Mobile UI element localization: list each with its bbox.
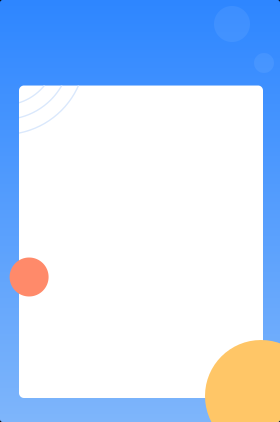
button[interactable]: Continue bbox=[19, 85, 263, 398]
